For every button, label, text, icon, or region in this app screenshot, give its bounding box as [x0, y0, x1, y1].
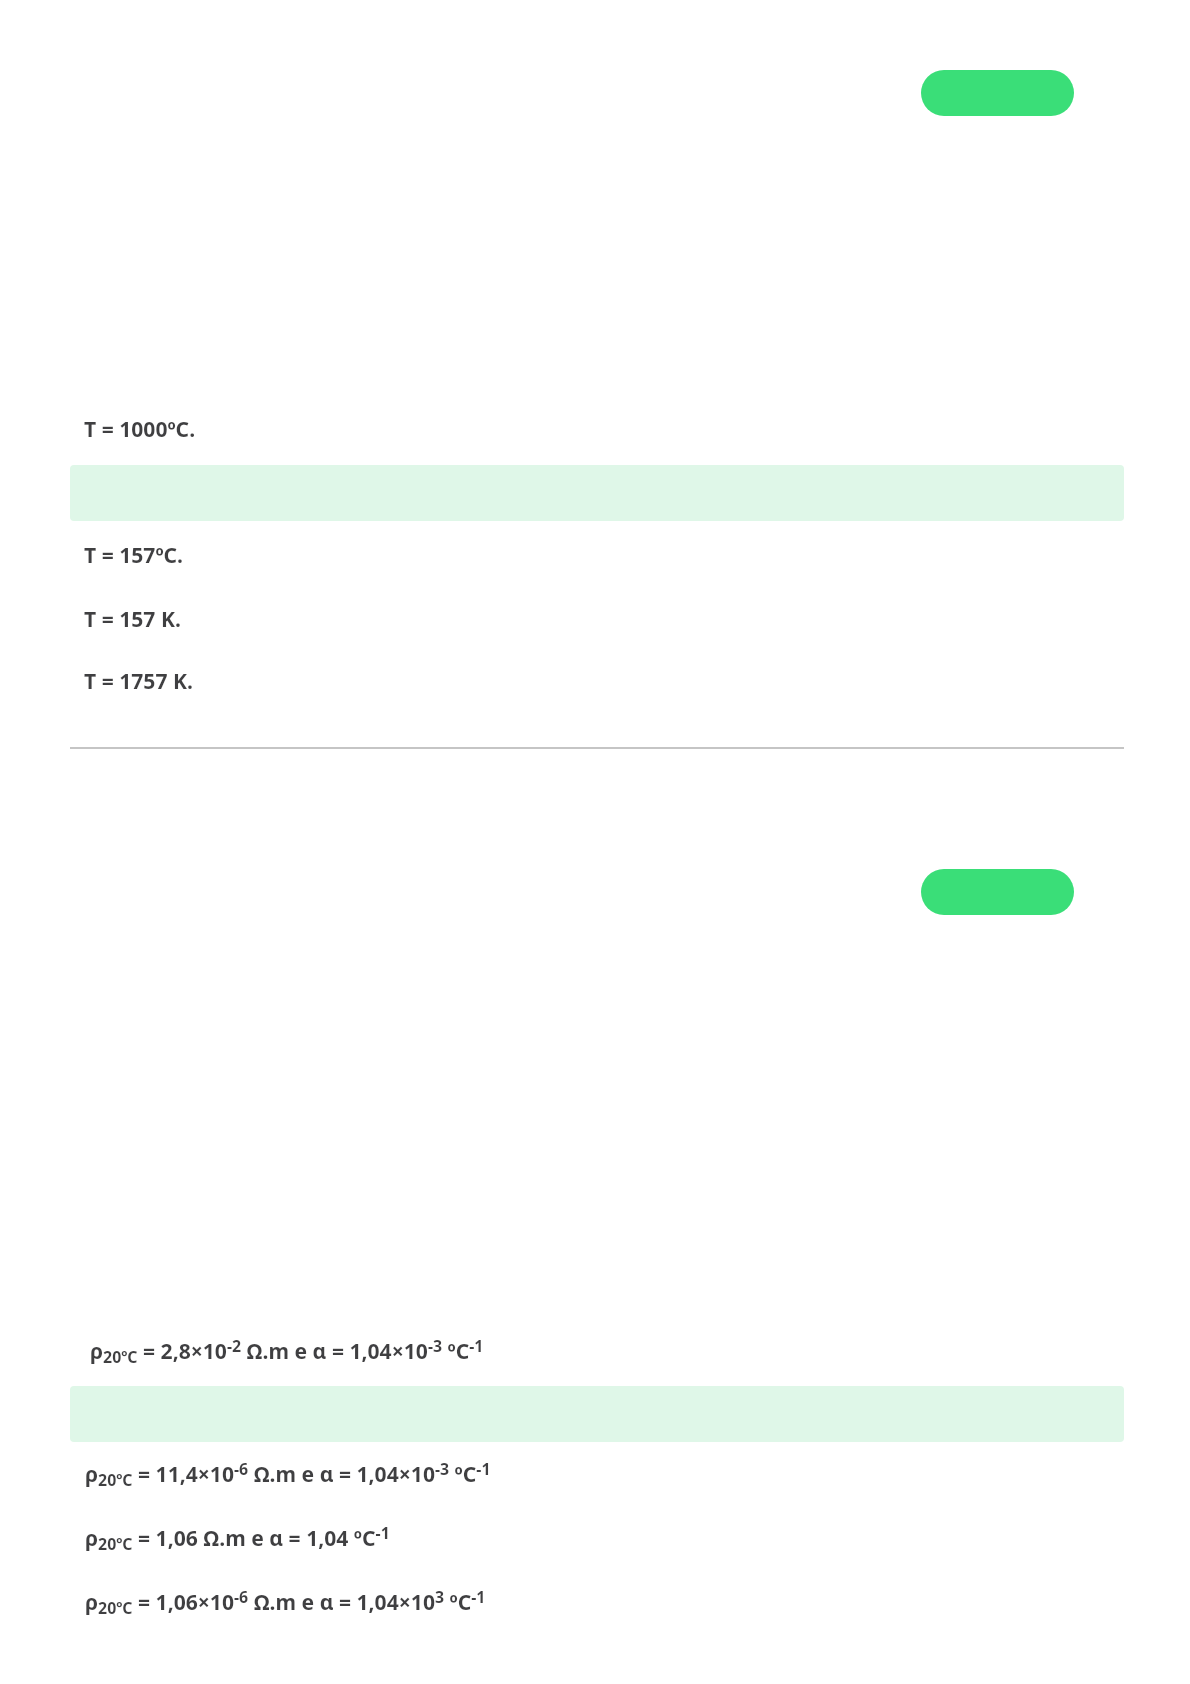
button[interactable]: Alternativa T = 157 graus C	[70, 522, 1124, 574]
staticText: ρ20ºC = 2,8×10-2 Ω.m e α = 1,04×10-3 ºC-…	[90, 1335, 484, 1367]
button[interactable]: Alternativa E	[70, 1568, 1124, 1620]
button[interactable]: Alternativa T = 1000 graus C	[70, 396, 1124, 448]
button[interactable]: Alternativa A	[70, 1317, 1124, 1369]
button[interactable]: Alternativa D	[70, 1504, 1124, 1556]
button[interactable]: Alternativa T = 157 K	[70, 586, 1124, 638]
button[interactable]: Alternativa T = 1757 K	[70, 648, 1124, 700]
button[interactable]: Alternativa C	[70, 1440, 1124, 1492]
staticText: T = 1000ºC.	[84, 414, 196, 443]
staticText: ρ20ºC = 11,4×10-6 Ω.m e α = 1,04×10-3 ºC…	[85, 1458, 491, 1490]
staticText: ρ20ºC = 1,06 Ω.m e α = 1,04 ºC-1	[85, 1522, 390, 1554]
staticText: T = 1757 K.	[84, 666, 193, 695]
button[interactable]: Responder questão 2	[921, 869, 1074, 915]
button[interactable]: Responder questão 1	[921, 70, 1074, 116]
staticText: T = 157 K.	[84, 604, 181, 633]
staticText: ρ20ºC = 1,06×10-6 Ω.m e α = 1,04×103 ºC-…	[85, 1586, 486, 1618]
staticText: T = 157ºC.	[84, 540, 184, 569]
